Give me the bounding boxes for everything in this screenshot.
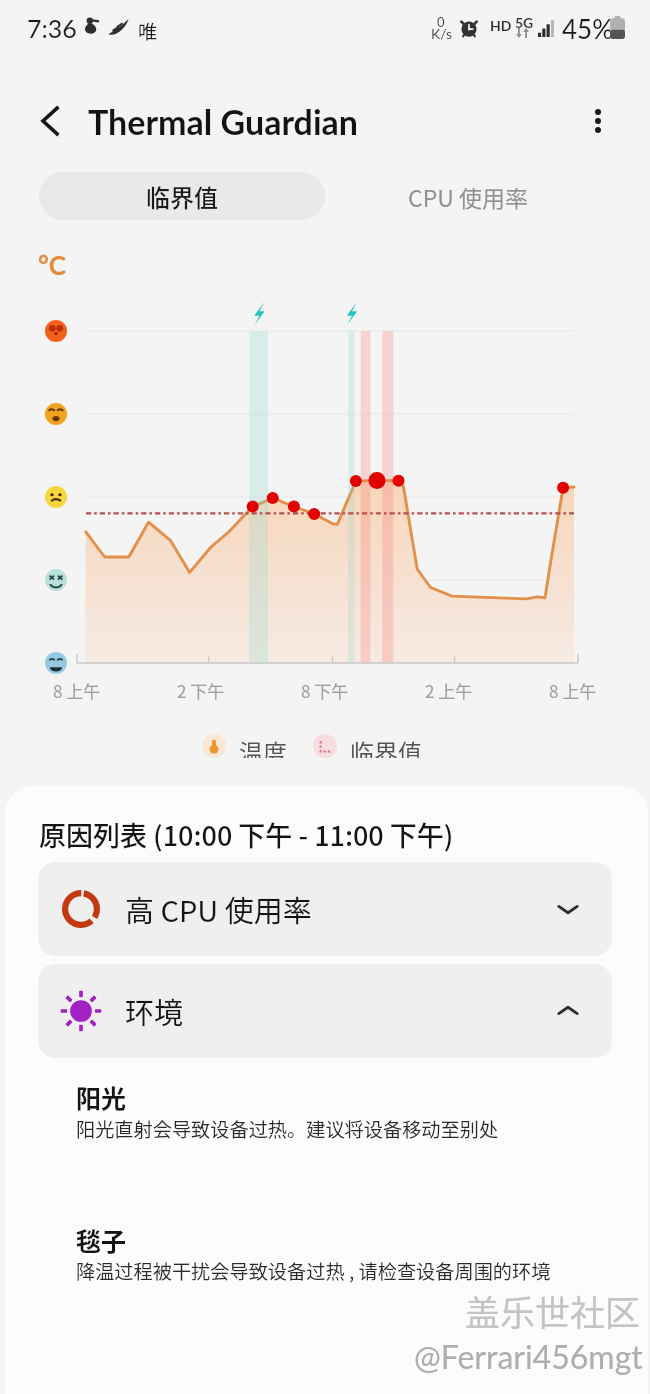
button[interactable]: 临界值 [39,172,325,220]
staticText: °C [38,249,67,280]
staticText: 临界值 [146,179,218,214]
button[interactable]: 高 CPU 使用率 [38,862,612,956]
staticText: 7:36 [27,13,77,43]
staticText: @Ferrari456mgt [414,1337,643,1375]
staticText: K/s [431,25,453,42]
staticText: Thermal Guardian [88,101,358,142]
staticText: 45% [562,13,613,44]
staticText: 0 [437,14,445,30]
staticText: 温度 [239,734,287,758]
staticText: 阳光直射会导致设备过热。建议将设备移动至别处 [76,1115,499,1143]
staticText: 唯 [138,17,158,45]
staticText: 2 下午 [177,678,225,703]
staticText: 5G [515,14,534,31]
staticText: 8 上午 [549,678,597,703]
button[interactable]: 环境 [38,964,612,1058]
button[interactable]: More options [574,97,622,145]
staticText: 高 CPU 使用率 [125,888,312,930]
staticText: 盖乐世社区 [465,1285,641,1336]
staticText: 临界值 [350,734,422,758]
staticText: 降温过程被干扰会导致设备过热 , 请检查设备周围的环境 [76,1257,551,1285]
staticText: HD [490,17,512,34]
staticText: CPU 使用率 [408,180,528,213]
staticText: 原因列表 (10:00 下午 - 11:00 下午) [39,815,454,854]
staticText: 8 下午 [301,678,349,703]
staticText: 2 上午 [425,678,473,703]
staticText: 阳光 [76,1079,127,1115]
staticText: 8 上午 [53,678,101,703]
button[interactable]: CPU 使用率 [325,172,611,220]
staticText: 环境 [125,990,184,1032]
staticText: 毯子 [76,1222,127,1258]
button[interactable]: Back [28,97,76,145]
